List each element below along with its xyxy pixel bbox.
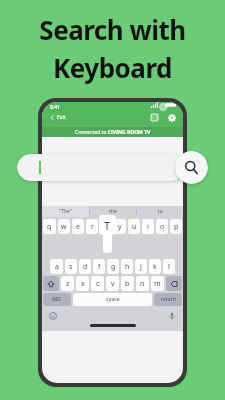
- staticText: o: [160, 222, 165, 232]
- staticText: k: [153, 262, 157, 272]
- staticText: l: [168, 262, 170, 272]
- button[interactable]: x: [76, 276, 89, 291]
- button[interactable]: ABC: [43, 293, 71, 306]
- button[interactable]: Emoji: [48, 311, 58, 321]
- staticText: e: [76, 222, 80, 232]
- button[interactable]: w: [58, 219, 70, 234]
- button[interactable]: q: [43, 219, 56, 234]
- staticText: q: [47, 222, 52, 232]
- staticText: i: [147, 222, 149, 232]
- staticText: f: [98, 262, 101, 272]
- button[interactable]: [17, 154, 185, 181]
- button[interactable]: Search: [175, 151, 208, 184]
- button[interactable]: j: [135, 259, 147, 274]
- button[interactable]: Settings: [166, 112, 177, 123]
- staticText: 9:41: [50, 104, 60, 111]
- staticText: ABC: [52, 296, 62, 303]
- button[interactable]: u: [128, 219, 140, 234]
- staticText: d: [83, 262, 88, 272]
- staticText: p: [174, 222, 179, 232]
- button[interactable]: i: [142, 219, 154, 234]
- button[interactable]: y: [114, 219, 126, 234]
- staticText: return: [161, 296, 176, 303]
- staticText: t: [105, 222, 108, 232]
- button[interactable]: h: [121, 259, 133, 274]
- staticText: the: [109, 208, 117, 215]
- button[interactable]: p: [170, 219, 182, 234]
- staticText: m: [154, 279, 161, 289]
- button[interactable]: Shift: [43, 276, 59, 291]
- staticText: w: [61, 222, 67, 232]
- staticText: c: [96, 279, 100, 289]
- staticText: y: [118, 222, 122, 232]
- staticText: s: [69, 262, 73, 272]
- button[interactable]: s: [65, 259, 77, 274]
- button[interactable]: Dictation: [167, 311, 177, 321]
- button[interactable]: d: [79, 259, 91, 274]
- staticText: Connected to: [75, 129, 108, 136]
- staticText: LIVING ROOM TV: [108, 129, 151, 136]
- button[interactable]: e: [72, 219, 84, 234]
- button[interactable]: t: [100, 219, 112, 234]
- staticText: v: [111, 279, 115, 289]
- button[interactable]: return: [154, 293, 182, 306]
- button[interactable]: b: [121, 276, 134, 291]
- button[interactable]: m: [151, 276, 164, 291]
- staticText: to: [158, 208, 163, 215]
- button[interactable]: "The": [42, 206, 89, 217]
- button[interactable]: f: [93, 259, 105, 274]
- button[interactable]: c: [91, 276, 104, 291]
- button[interactable]: g: [107, 259, 119, 274]
- button[interactable]: z: [61, 276, 74, 291]
- staticText: Exit: [57, 114, 66, 121]
- staticText: h: [125, 262, 130, 272]
- button[interactable]: r: [86, 219, 98, 234]
- staticText: T: [104, 218, 111, 233]
- staticText: "The": [59, 208, 72, 215]
- button[interactable]: space: [73, 293, 152, 306]
- staticText: x: [81, 279, 85, 289]
- staticText: Keyboard: [53, 50, 172, 85]
- button[interactable]: o: [156, 219, 168, 234]
- button[interactable]: k: [149, 259, 161, 274]
- button[interactable]: the: [90, 206, 136, 217]
- button[interactable]: Backspace: [166, 276, 182, 291]
- staticText: j: [140, 262, 142, 272]
- staticText: Search with: [39, 12, 186, 47]
- button[interactable]: n: [136, 276, 149, 291]
- staticText: r: [91, 222, 94, 232]
- button[interactable]: Cast: [149, 112, 160, 123]
- staticText: b: [125, 279, 130, 289]
- staticText: n: [140, 279, 145, 289]
- staticText: g: [111, 262, 116, 272]
- button[interactable]: a: [50, 259, 63, 274]
- staticText: a: [55, 262, 59, 272]
- button[interactable]: v: [106, 276, 119, 291]
- button[interactable]: l: [163, 259, 175, 274]
- staticText: z: [66, 279, 70, 289]
- staticText: space: [106, 296, 120, 303]
- button[interactable]: Exit: [48, 112, 68, 123]
- button[interactable]: to: [137, 206, 183, 217]
- staticText: u: [132, 222, 137, 232]
